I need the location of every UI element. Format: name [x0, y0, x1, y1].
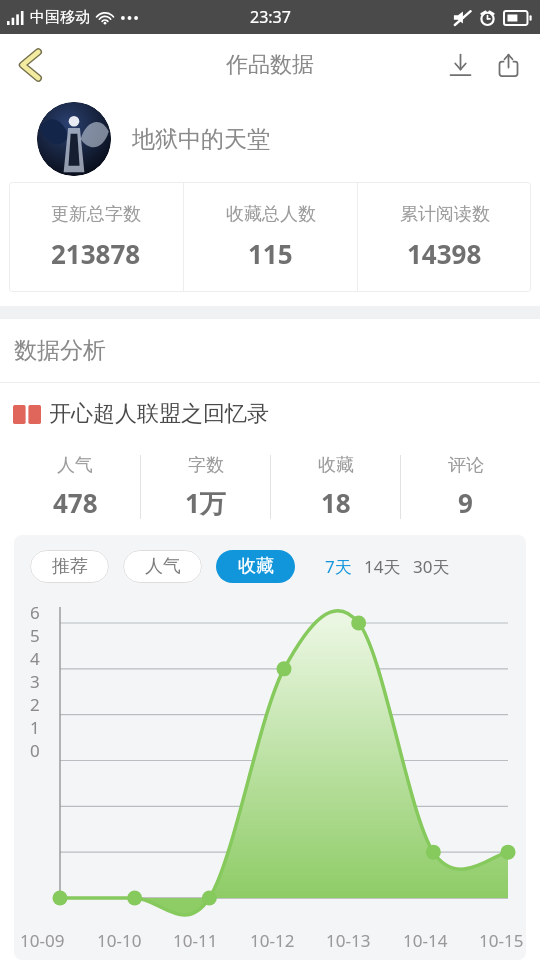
staticText: 地狱中的天堂 — [132, 125, 270, 154]
button[interactable]: 收藏 — [216, 550, 295, 583]
staticText: 478 — [53, 485, 98, 520]
staticText: 人气 — [57, 454, 93, 477]
button[interactable]: 收藏 — [271, 445, 400, 529]
staticText: 推荐 — [52, 555, 88, 578]
staticText: 开心超人联盟之回忆录 — [49, 400, 269, 428]
button[interactable]: Download — [436, 41, 484, 89]
button[interactable]: 更新总字数 — [9, 182, 183, 292]
staticText: 2 — [30, 693, 40, 716]
button[interactable]: 地狱中的天堂 — [0, 96, 540, 182]
staticText: 10-11 — [173, 929, 218, 952]
button[interactable]: 人气 — [123, 550, 202, 583]
button[interactable]: 收藏总人数 — [184, 182, 357, 292]
button[interactable]: 7天 — [325, 555, 352, 578]
staticText: 更新总字数 — [51, 203, 141, 226]
staticText: 10-12 — [250, 929, 295, 952]
staticText: 数据分析 — [14, 336, 106, 365]
staticText: 10-09 — [20, 929, 65, 952]
staticText: 累计阅读数 — [400, 203, 490, 226]
staticText: 4 — [30, 647, 40, 670]
staticText: 3 — [30, 670, 40, 693]
button[interactable]: 推荐 — [30, 550, 109, 583]
button[interactable]: 累计阅读数 — [358, 182, 531, 292]
staticText: 1 — [30, 716, 40, 739]
button[interactable]: 14天 — [364, 555, 401, 578]
button[interactable]: 字数 — [141, 445, 270, 529]
button[interactable]: 30天 — [413, 555, 450, 578]
staticText: 收藏 — [238, 555, 274, 578]
staticText: 6 — [30, 601, 40, 624]
staticText: 115 — [248, 236, 293, 271]
staticText: 作品数据 — [226, 51, 314, 79]
staticText: 1万 — [185, 485, 226, 521]
staticText: 字数 — [188, 454, 224, 477]
staticText: 10-15 — [479, 929, 524, 952]
button[interactable]: Share — [484, 41, 532, 89]
staticText: 23:37 — [250, 6, 291, 28]
staticText: 10-14 — [403, 929, 448, 952]
staticText: 0 — [30, 739, 40, 762]
staticText: 评论 — [448, 454, 484, 477]
button[interactable]: Back — [4, 39, 56, 91]
staticText: 5 — [30, 624, 40, 647]
staticText: 18 — [321, 485, 351, 520]
staticText: 213878 — [51, 236, 141, 271]
staticText: 9 — [458, 485, 473, 520]
staticText: 人气 — [145, 555, 181, 578]
staticText: 14398 — [407, 236, 482, 271]
button[interactable]: 评论 — [401, 445, 530, 529]
button[interactable]: 人气 — [10, 445, 140, 529]
staticText: 10-13 — [326, 929, 371, 952]
staticText: 收藏 — [318, 454, 354, 477]
staticText: 收藏总人数 — [226, 203, 316, 226]
staticText: 中国移动 — [30, 8, 90, 27]
button[interactable]: 开心超人联盟之回忆录 — [0, 383, 540, 445]
staticText: 10-10 — [97, 929, 142, 952]
